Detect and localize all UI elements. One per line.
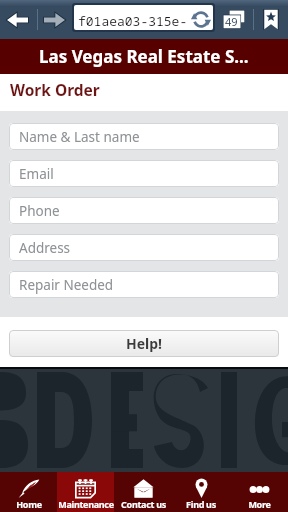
button[interactable]: Bookmarks xyxy=(254,0,288,39)
button[interactable]: Address xyxy=(9,234,279,261)
staticText: Las Vegas Real Estate S... xyxy=(39,45,249,68)
staticText: Work Order xyxy=(10,79,100,100)
staticText: Address xyxy=(19,239,71,257)
button[interactable]: Repair Needed xyxy=(9,271,279,298)
button[interactable]: Phone xyxy=(9,197,279,224)
button[interactable]: Email xyxy=(9,160,279,187)
staticText: Phone xyxy=(19,202,60,220)
staticText: Find us xyxy=(186,498,216,510)
staticText: Name & Last name xyxy=(19,128,140,146)
staticText: More xyxy=(248,498,271,510)
button[interactable]: Home xyxy=(0,472,57,512)
staticText: Maintenance xyxy=(58,498,114,510)
button[interactable]: Tabs xyxy=(216,0,252,39)
button[interactable]: Contact us xyxy=(114,472,172,512)
button[interactable]: Find us xyxy=(172,472,230,512)
staticText: 49 xyxy=(225,14,238,29)
staticText: Email xyxy=(19,165,54,183)
button[interactable]: Name & Last name xyxy=(9,123,279,150)
staticText: Contact us xyxy=(121,498,166,510)
staticText: Repair Needed xyxy=(19,276,114,294)
button[interactable]: Help! xyxy=(9,330,279,357)
staticText: Home xyxy=(16,498,42,510)
button[interactable]: More xyxy=(230,472,288,512)
button[interactable]: f01aea03-315e-4 xyxy=(74,5,213,30)
button[interactable]: Forward xyxy=(37,0,73,39)
staticText: f01aea03-315e-4 xyxy=(78,12,189,30)
button[interactable]: Maintenance xyxy=(57,472,114,512)
button[interactable]: Back xyxy=(0,0,36,39)
staticText: Help! xyxy=(126,334,163,353)
